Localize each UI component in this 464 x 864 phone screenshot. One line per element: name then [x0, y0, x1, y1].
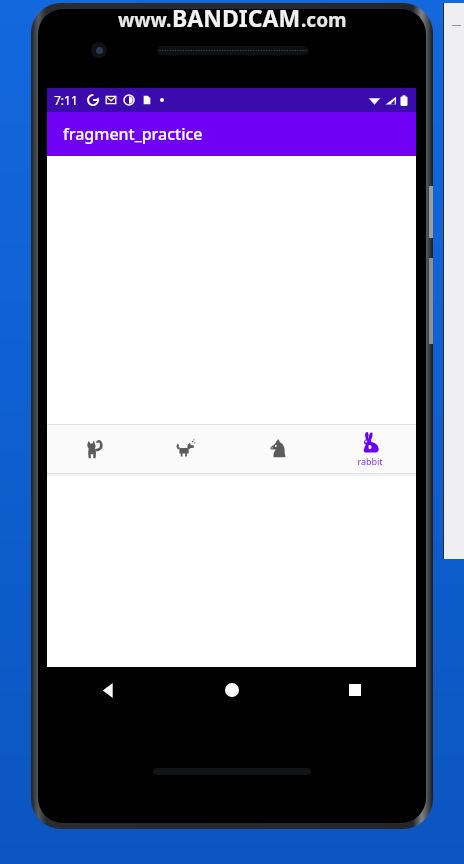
staticText: 7:11: [54, 92, 78, 108]
staticText: www.: [118, 7, 172, 33]
button[interactable]: rabbit: [324, 425, 416, 473]
staticText: fragment_practice: [63, 123, 203, 145]
button[interactable]: Horse: [232, 425, 324, 473]
button[interactable]: Home: [170, 667, 293, 713]
button[interactable]: Back: [47, 667, 170, 713]
button[interactable]: Dog: [140, 425, 232, 473]
staticText: BANDICAM: [172, 2, 301, 33]
staticText: rabbit: [357, 455, 383, 467]
button[interactable]: Cat: [47, 425, 140, 473]
staticText: .com: [301, 7, 347, 33]
button[interactable]: Recent apps: [293, 667, 416, 713]
